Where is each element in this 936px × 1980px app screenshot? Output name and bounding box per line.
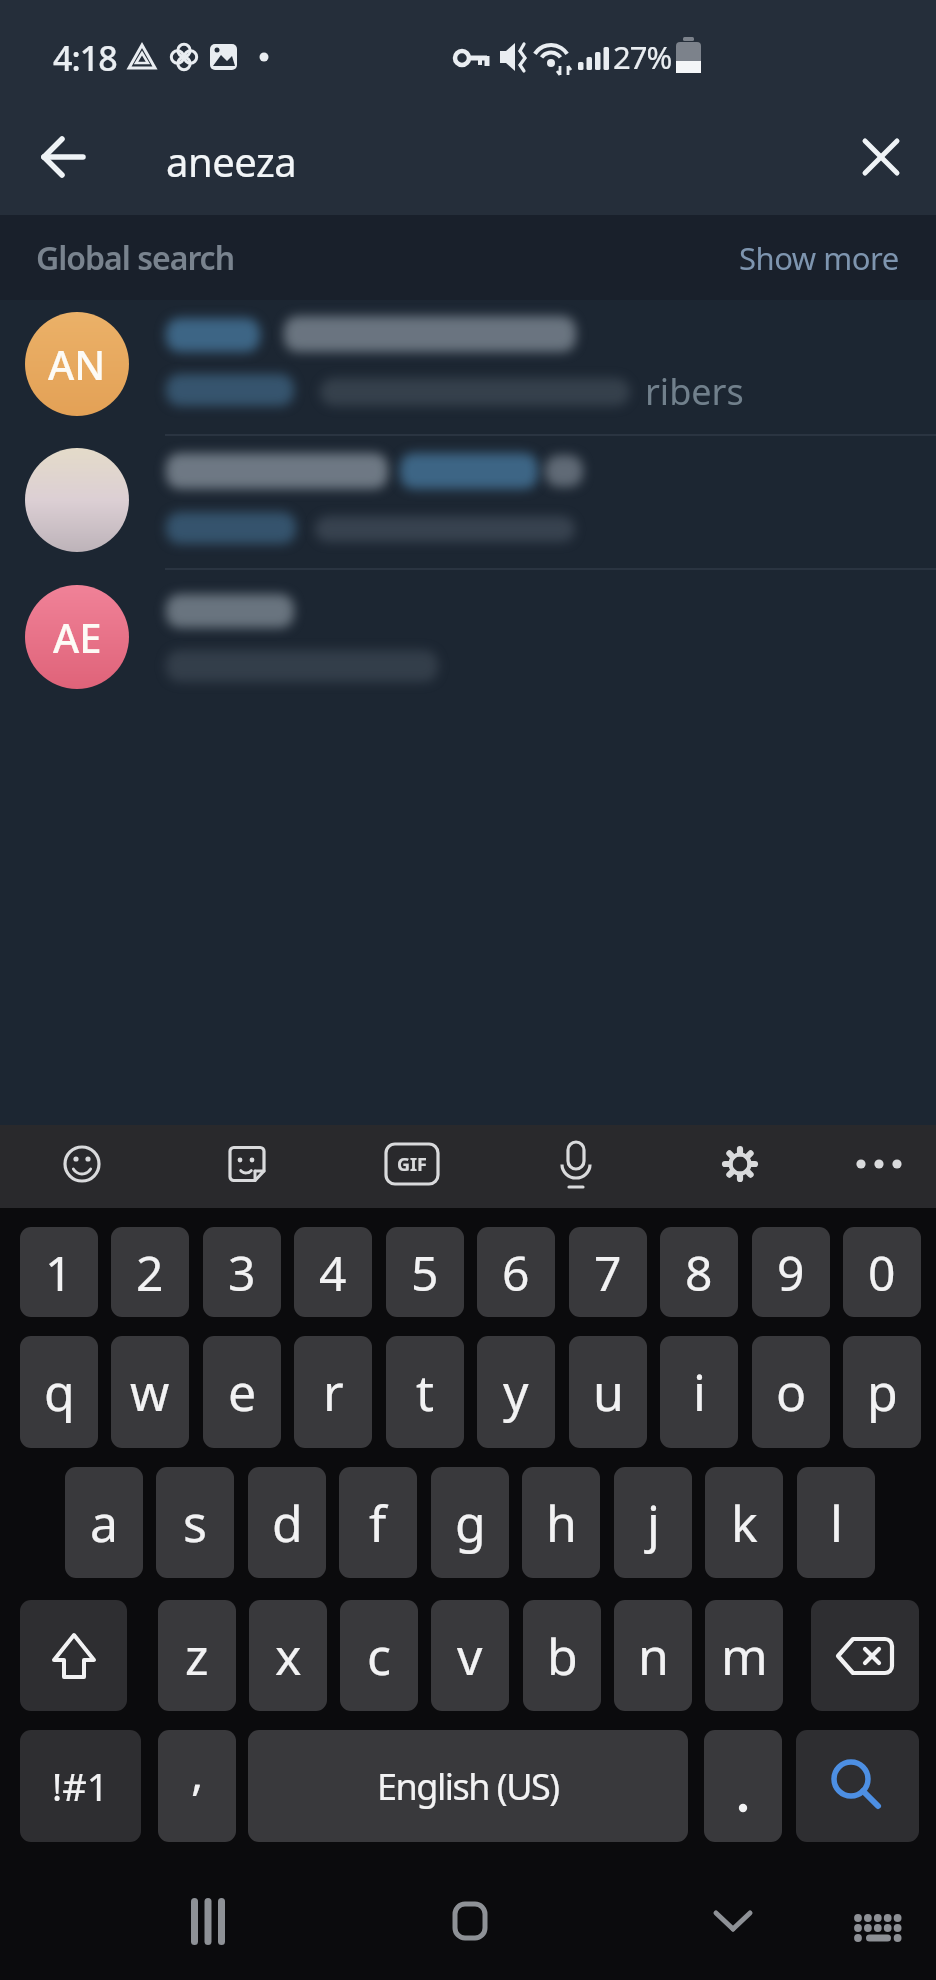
button[interactable] — [372, 1125, 452, 1208]
button[interactable] — [796, 1730, 919, 1842]
button[interactable]: AN — [25, 312, 129, 416]
button[interactable] — [42, 1125, 122, 1208]
button[interactable]: 9 — [752, 1227, 830, 1317]
staticText: b — [547, 1622, 578, 1690]
button[interactable]: m — [705, 1600, 783, 1711]
staticText: k — [731, 1489, 758, 1557]
button[interactable]: c — [340, 1600, 418, 1711]
button[interactable]: i — [660, 1336, 738, 1448]
staticText: h — [546, 1489, 577, 1557]
button[interactable]: a — [65, 1467, 143, 1578]
staticText: 4 — [319, 1240, 347, 1305]
staticText: f — [369, 1489, 387, 1557]
button[interactable] — [700, 1125, 780, 1208]
staticText: AE — [53, 610, 102, 664]
button[interactable]: d — [248, 1467, 326, 1578]
staticText: g — [455, 1489, 486, 1557]
button[interactable]: f — [339, 1467, 417, 1578]
staticText: 0 — [868, 1240, 896, 1305]
staticText: 9 — [777, 1240, 805, 1305]
button[interactable] — [811, 1600, 919, 1711]
staticText: t — [416, 1358, 435, 1426]
button[interactable] — [415, 1880, 525, 1980]
staticText: 5 — [411, 1240, 439, 1305]
button[interactable]: e — [203, 1336, 281, 1448]
staticText: ribers — [645, 367, 744, 416]
button[interactable]: q — [20, 1336, 98, 1448]
button[interactable]: 4 — [294, 1227, 372, 1317]
button[interactable]: w — [111, 1336, 189, 1448]
staticText: l — [830, 1489, 843, 1557]
button[interactable] — [840, 115, 930, 200]
button[interactable] — [20, 115, 110, 200]
staticText: d — [272, 1489, 303, 1557]
button[interactable]: 3 — [203, 1227, 281, 1317]
staticText: 4:18 — [53, 35, 117, 81]
button[interactable]: Show more — [660, 220, 920, 296]
button[interactable]: o — [752, 1336, 830, 1448]
button[interactable] — [20, 1600, 127, 1711]
staticText: y — [503, 1358, 529, 1426]
staticText: c — [367, 1622, 391, 1690]
button[interactable]: k — [705, 1467, 783, 1578]
button[interactable] — [0, 436, 936, 570]
button[interactable]: 0 — [843, 1227, 921, 1317]
button[interactable]: p — [843, 1336, 921, 1448]
button[interactable]: !#1 — [20, 1730, 141, 1842]
staticText: 8 — [685, 1240, 713, 1305]
button[interactable]: 8 — [660, 1227, 738, 1317]
staticText: Global search — [36, 236, 235, 280]
button[interactable] — [704, 1730, 782, 1842]
button[interactable]: English (US) — [248, 1730, 688, 1842]
staticText: 27% — [613, 36, 672, 78]
staticText: s — [183, 1489, 207, 1557]
button[interactable]: x — [249, 1600, 327, 1711]
button[interactable] — [0, 570, 936, 706]
staticText: u — [593, 1358, 624, 1426]
button[interactable]: u — [569, 1336, 647, 1448]
staticText: r — [323, 1358, 344, 1426]
staticText: 3 — [228, 1240, 256, 1305]
staticText: 6 — [502, 1240, 530, 1305]
staticText: q — [44, 1358, 75, 1426]
button[interactable]: r — [294, 1336, 372, 1448]
staticText: e — [228, 1358, 257, 1426]
button[interactable]: n — [614, 1600, 692, 1711]
staticText: o — [776, 1358, 807, 1426]
button[interactable]: z — [158, 1600, 236, 1711]
button[interactable]: 5 — [386, 1227, 464, 1317]
button[interactable] — [0, 300, 936, 436]
staticText: i — [693, 1358, 706, 1426]
staticText: , — [191, 1741, 204, 1804]
button[interactable]: 7 — [569, 1227, 647, 1317]
button[interactable]: AE — [25, 585, 129, 689]
staticText: w — [130, 1358, 170, 1426]
button[interactable]: t — [386, 1336, 464, 1448]
button[interactable] — [678, 1880, 788, 1980]
button[interactable] — [207, 1125, 287, 1208]
button[interactable]: v — [431, 1600, 509, 1711]
button[interactable] — [536, 1125, 616, 1208]
button[interactable]: 1 — [20, 1227, 98, 1317]
button[interactable]: s — [156, 1467, 234, 1578]
staticText: GIF — [397, 1152, 427, 1177]
button[interactable]: l — [797, 1467, 875, 1578]
staticText: English (US) — [377, 1762, 559, 1811]
staticText: x — [275, 1622, 302, 1690]
button[interactable]: j — [614, 1467, 692, 1578]
staticText: Show more — [739, 237, 899, 279]
button[interactable]: b — [523, 1600, 601, 1711]
button[interactable] — [152, 1880, 262, 1980]
staticText: a — [90, 1489, 119, 1557]
button[interactable]: 6 — [477, 1227, 555, 1317]
button[interactable]: y — [477, 1336, 555, 1448]
button[interactable]: g — [431, 1467, 509, 1578]
button[interactable] — [826, 1880, 936, 1980]
staticText: aneeza — [166, 134, 297, 188]
button[interactable]: , — [158, 1730, 236, 1842]
button[interactable]: h — [522, 1467, 600, 1578]
button[interactable]: 2 — [111, 1227, 189, 1317]
staticText: 2 — [136, 1240, 164, 1305]
button[interactable] — [25, 448, 129, 552]
button[interactable] — [840, 1125, 920, 1208]
